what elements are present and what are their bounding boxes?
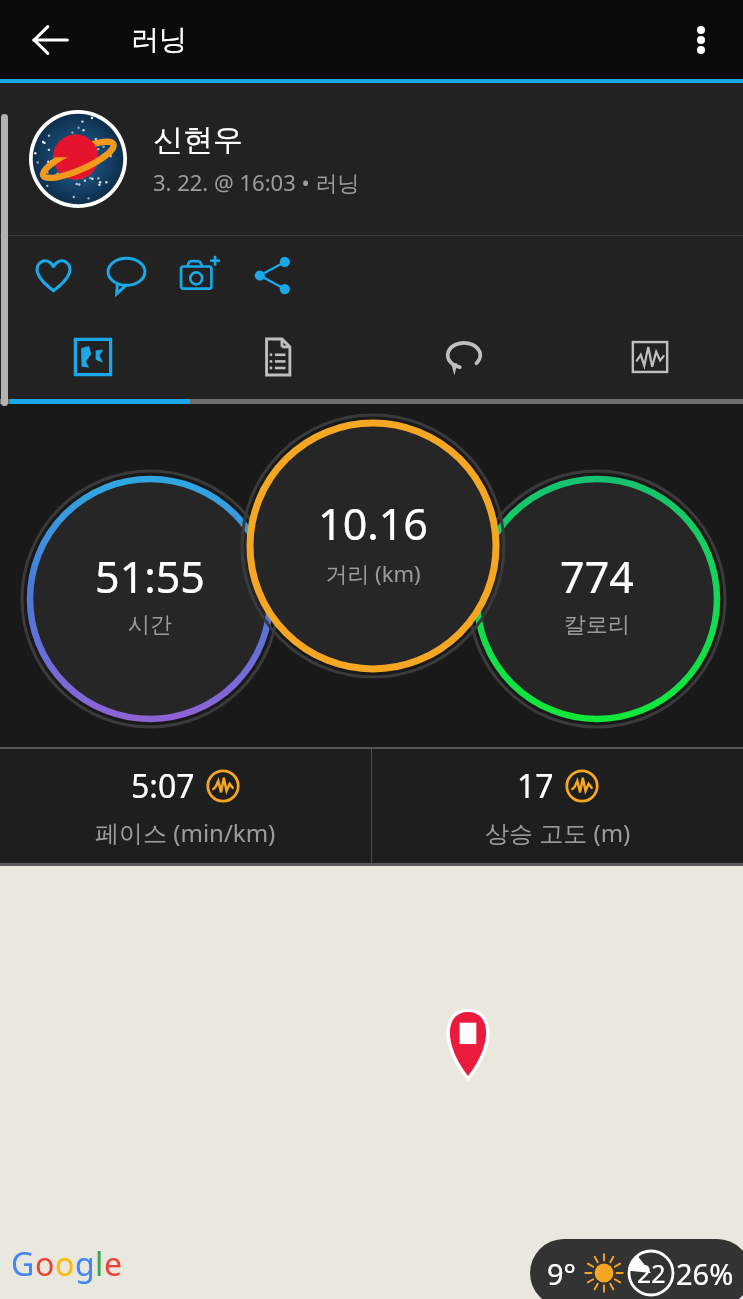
staticText: e — [104, 1242, 123, 1286]
staticText: o — [55, 1242, 75, 1286]
button[interactable]: Map tab — [0, 314, 185, 399]
button[interactable]: Graphs tab — [557, 314, 743, 399]
staticText: 신현우 — [153, 121, 243, 159]
button[interactable]: Weather and battery status — [530, 1239, 743, 1299]
button[interactable]: Comment — [90, 239, 163, 312]
staticText: 774 — [560, 547, 634, 606]
staticText: l — [95, 1242, 104, 1286]
button[interactable]: Like — [17, 239, 90, 312]
button[interactable]: Map — [0, 866, 743, 1299]
staticText: g — [75, 1242, 95, 1286]
staticText: 거리 (km) — [325, 558, 421, 588]
staticText: 3. 22. @ 16:03 • 러닝 — [153, 167, 360, 197]
button[interactable]: 51:55 — [0, 404, 743, 747]
staticText: 51:55 — [95, 547, 205, 606]
staticText: G — [11, 1242, 35, 1286]
staticText: 칼로리 — [564, 611, 630, 639]
button[interactable]: Add photo — [163, 239, 236, 312]
button[interactable]: 17 — [372, 749, 743, 863]
staticText: 5:07 — [131, 764, 195, 808]
button[interactable]: Back — [17, 7, 83, 73]
staticText: 상승 고도 (m) — [485, 816, 631, 849]
button[interactable]: Details tab — [185, 314, 371, 399]
staticText: 17 — [517, 764, 554, 808]
button[interactable]: Laps tab — [371, 314, 557, 399]
button[interactable]: Profile picture — [0, 83, 743, 235]
staticText: 26% — [676, 1254, 734, 1293]
button[interactable]: Share — [236, 239, 309, 312]
staticText: 시간 — [128, 611, 172, 639]
staticText: 22 — [637, 1256, 666, 1290]
staticText: 러닝 — [131, 22, 187, 57]
button[interactable]: 5:07 — [0, 749, 371, 863]
staticText: 10.16 — [318, 494, 428, 553]
button[interactable]: More options — [668, 7, 734, 73]
staticText: 9° — [547, 1254, 577, 1293]
button[interactable]: Profile picture — [29, 110, 127, 208]
staticText: 페이스 (min/km) — [95, 816, 276, 849]
staticText: o — [35, 1242, 55, 1286]
